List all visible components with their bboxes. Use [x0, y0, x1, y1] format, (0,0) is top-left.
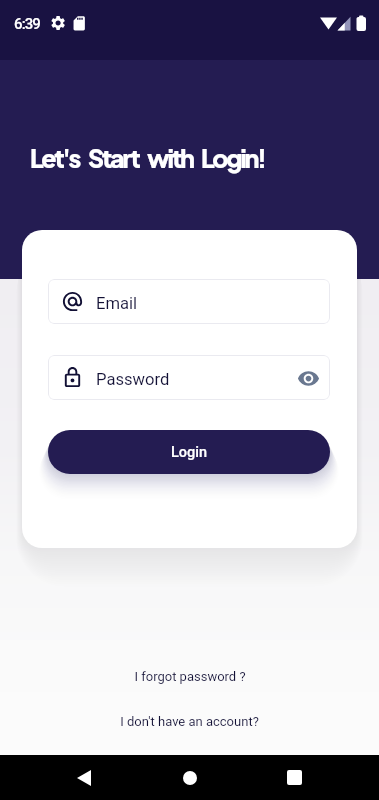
- button[interactable]: Password: [48, 355, 330, 400]
- button[interactable]: Login: [48, 430, 330, 474]
- button[interactable]: I forgot password ?: [124, 665, 256, 688]
- button[interactable]: I don't have an account?: [110, 710, 269, 733]
- button[interactable]: Recent apps: [274, 755, 314, 800]
- staticText: I don't have an account?: [120, 714, 259, 729]
- staticText: 6:39: [14, 15, 40, 33]
- staticText: Password: [96, 370, 170, 389]
- button[interactable]: Home: [170, 755, 210, 800]
- button[interactable]: Back: [64, 755, 104, 800]
- staticText: Email: [96, 294, 138, 313]
- staticText: Login: [171, 444, 208, 461]
- staticText: Let's: [30, 142, 80, 173]
- staticText: Start: [88, 142, 139, 173]
- staticText: Login!: [201, 142, 265, 173]
- button[interactable]: Show password: [295, 365, 321, 391]
- staticText: I forgot password ?: [134, 669, 246, 684]
- staticText: with: [147, 142, 193, 173]
- button[interactable]: Email: [48, 279, 330, 324]
